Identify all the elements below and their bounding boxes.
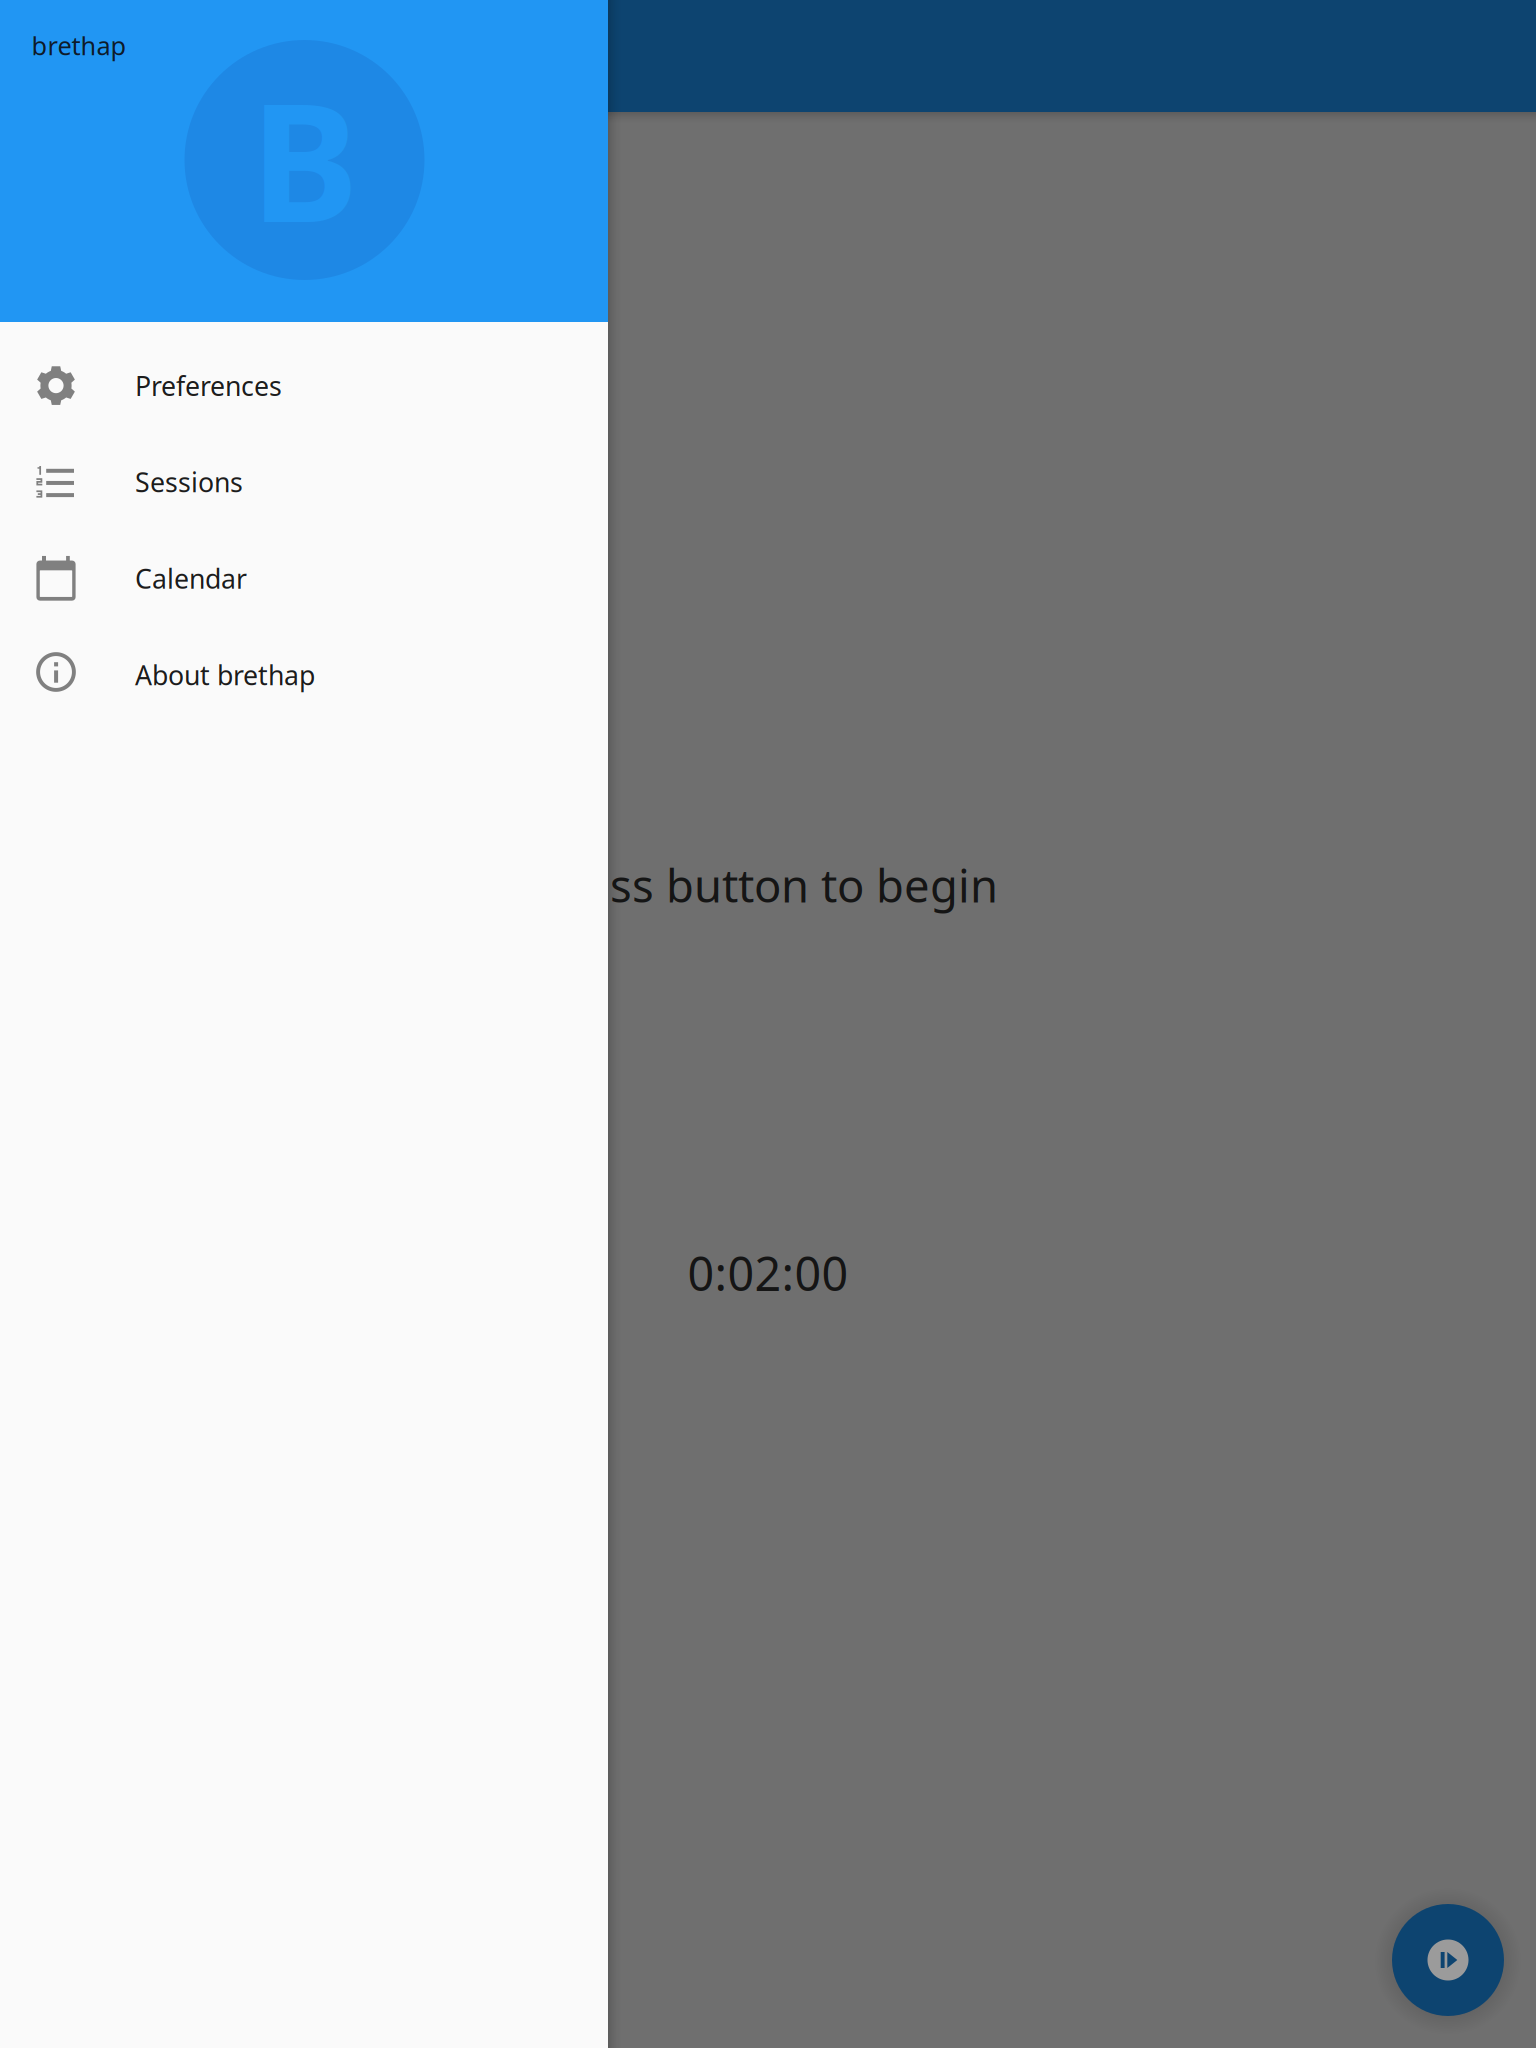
staticText: Preferences bbox=[135, 368, 282, 403]
staticText: Calendar bbox=[135, 561, 247, 596]
staticText: About brethap bbox=[135, 657, 315, 692]
button[interactable]: About brethap bbox=[0, 627, 608, 723]
button[interactable]: Start session bbox=[1373, 1885, 1523, 2035]
button[interactable]: Calendar bbox=[0, 530, 608, 627]
staticText: press button to begin bbox=[538, 855, 998, 915]
button[interactable]: Preferences bbox=[0, 337, 608, 434]
staticText: 0:02:00 bbox=[687, 1242, 848, 1304]
staticText: B bbox=[250, 51, 358, 267]
button[interactable]: Sessions bbox=[0, 434, 608, 530]
staticText: Sessions bbox=[135, 464, 243, 500]
staticText: brethap bbox=[31, 28, 126, 62]
